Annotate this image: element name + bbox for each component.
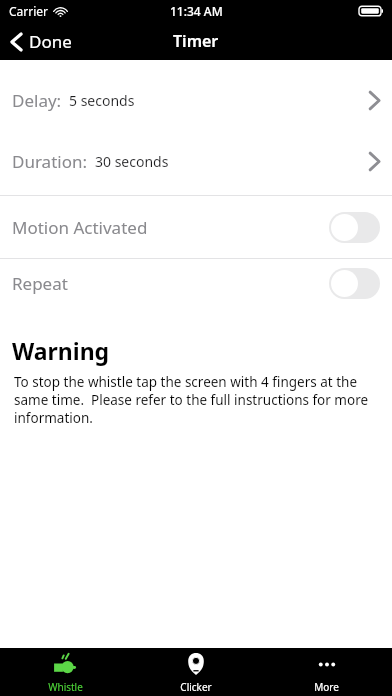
button[interactable]: Motion Activated bbox=[0, 196, 392, 258]
staticText: Carrier bbox=[9, 3, 49, 19]
staticText: To stop the whistle tap the screen with … bbox=[14, 373, 374, 427]
button[interactable]: Delay: bbox=[0, 73, 392, 127]
staticText: Repeat bbox=[12, 272, 68, 295]
other: Motion Activated toggle, off bbox=[329, 212, 380, 243]
staticText: 30 seconds bbox=[95, 152, 169, 171]
button[interactable]: Done bbox=[0, 26, 84, 57]
other: Repeat toggle, off bbox=[329, 268, 380, 299]
staticText: Duration: bbox=[12, 150, 88, 173]
staticText: 11:34 AM bbox=[170, 3, 223, 19]
staticText: More bbox=[314, 680, 339, 694]
staticText: Delay: bbox=[12, 89, 62, 112]
staticText: Warning bbox=[12, 335, 110, 366]
button[interactable]: Whistle bbox=[0, 648, 130, 696]
staticText: Whistle bbox=[48, 680, 83, 694]
button[interactable]: Clicker bbox=[130, 648, 261, 696]
button[interactable]: Repeat bbox=[0, 259, 392, 307]
button[interactable]: Duration: bbox=[0, 134, 392, 188]
staticText: Motion Activated bbox=[12, 216, 148, 239]
staticText: 5 seconds bbox=[69, 91, 135, 110]
staticText: Timer bbox=[173, 30, 219, 52]
staticText: Clicker bbox=[180, 680, 212, 694]
button[interactable]: More bbox=[261, 648, 392, 696]
staticText: Done bbox=[29, 30, 72, 53]
